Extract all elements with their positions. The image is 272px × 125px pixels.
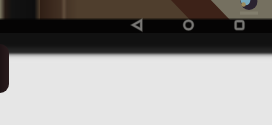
button[interactable]: Recent apps xyxy=(228,14,254,34)
button[interactable]: Home xyxy=(176,14,202,34)
button[interactable]: Back xyxy=(124,14,150,34)
